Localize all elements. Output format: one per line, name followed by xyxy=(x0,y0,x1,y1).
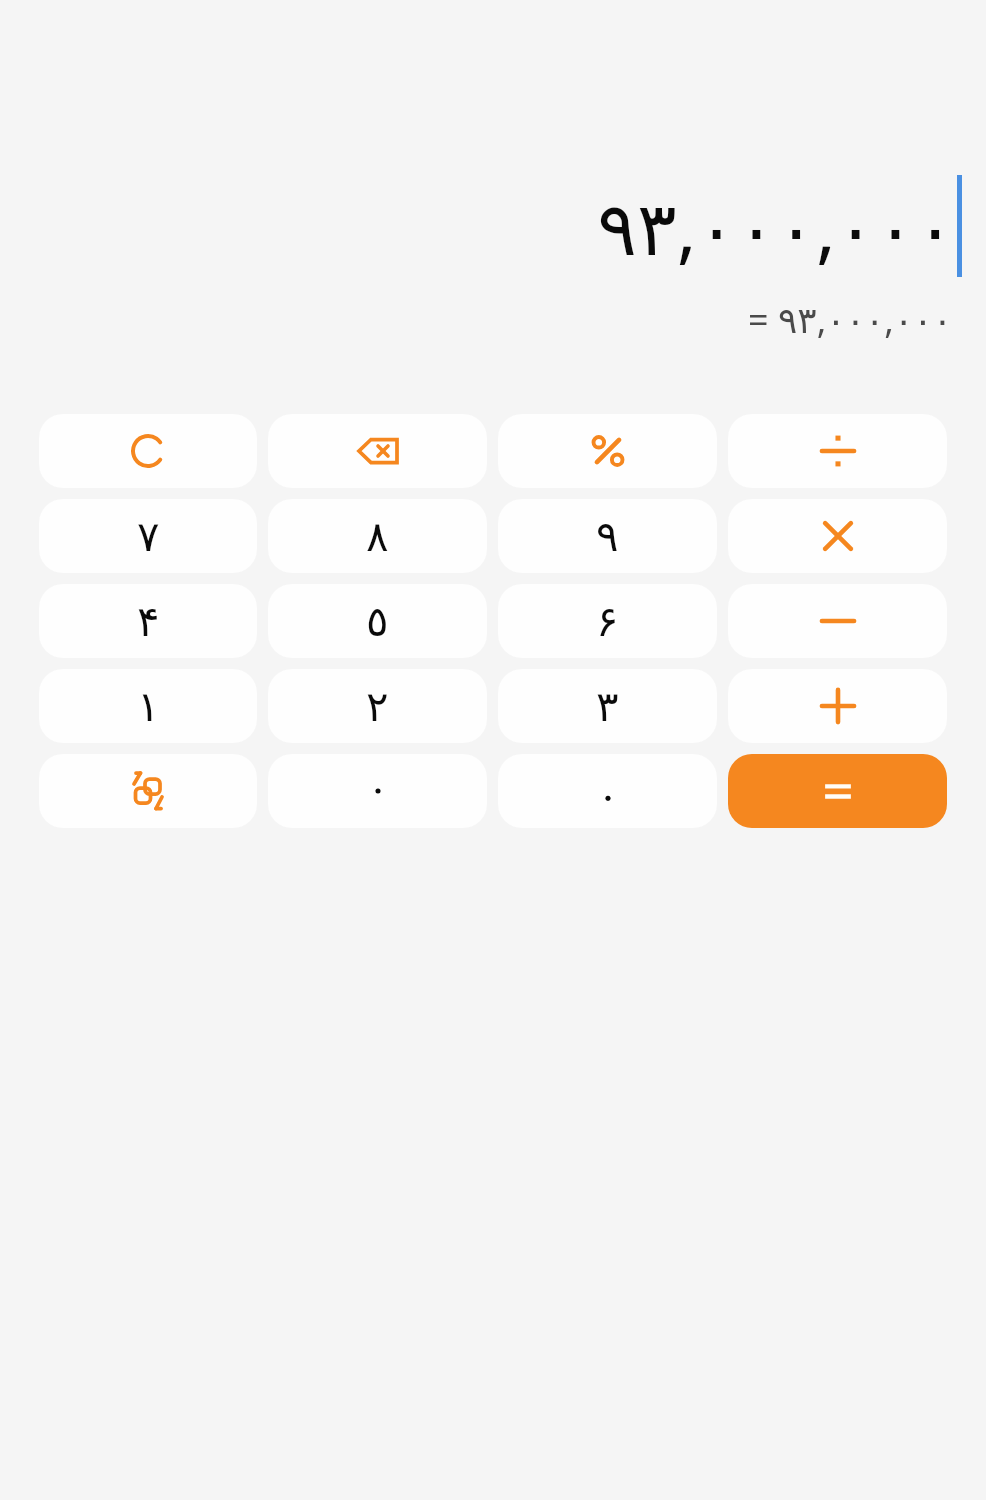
button[interactable]: Plus xyxy=(728,669,947,743)
button[interactable]: ٥ xyxy=(268,584,487,658)
staticText: ٢ xyxy=(366,682,389,731)
button[interactable]: Minus xyxy=(728,584,947,658)
button[interactable]: ٢ xyxy=(268,669,487,743)
staticText: ٥ xyxy=(366,597,389,646)
staticText: ٩ xyxy=(596,512,619,561)
staticText: ٣ xyxy=(596,682,619,731)
button[interactable]: ٩ xyxy=(498,499,717,573)
staticText: ۶ xyxy=(596,597,619,646)
button[interactable]: ۶ xyxy=(498,584,717,658)
button[interactable]: Decimal point xyxy=(498,754,717,828)
staticText: ٨ xyxy=(366,512,389,561)
button[interactable]: ١ xyxy=(39,669,257,743)
staticText: ١ xyxy=(137,682,160,731)
button[interactable]: Multiply xyxy=(728,499,947,573)
button[interactable]: Divide xyxy=(728,414,947,488)
button[interactable]: Thousands separator xyxy=(268,754,487,828)
button[interactable]: ٧ xyxy=(39,499,257,573)
button[interactable]: ٣ xyxy=(498,669,717,743)
staticText: ۴ xyxy=(137,597,160,646)
staticText: ٧ xyxy=(137,512,160,561)
button[interactable]: Equals xyxy=(728,754,947,828)
button[interactable]: Percent xyxy=(498,414,717,488)
button[interactable]: Number format xyxy=(39,754,257,828)
button[interactable]: ۴ xyxy=(39,584,257,658)
staticText: ٩٣,٠٠٠,٠٠٠ xyxy=(597,176,955,277)
button[interactable]: Backspace xyxy=(268,414,487,488)
button[interactable]: ٨ xyxy=(268,499,487,573)
button[interactable]: Clear xyxy=(39,414,257,488)
staticText: = ٩٣,٠٠٠,٠٠٠ xyxy=(748,295,952,344)
